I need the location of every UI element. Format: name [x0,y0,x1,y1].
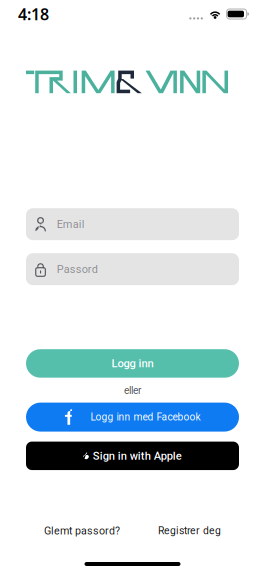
button[interactable]: Logg inn med Facebook [0,403,265,432]
button[interactable]: Sign in with Apple [0,442,265,470]
staticText: Email [57,218,85,231]
staticText: Glemt passord? [44,524,120,537]
staticText: eller [124,385,141,397]
staticText: Logg inn med Facebook [90,411,200,423]
staticText: Passord [57,263,98,276]
staticText: 4:18 [18,3,49,25]
button[interactable]: Logg inn [0,349,265,378]
staticText: Registrer deg [158,525,221,537]
button[interactable]: Registrer deg [158,525,221,537]
button[interactable]: Glemt passord? [44,524,120,537]
staticText: Sign in with Apple [93,449,182,462]
staticText: Logg inn [111,357,153,370]
